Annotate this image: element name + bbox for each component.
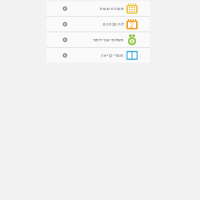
staticText: מערכת שעות <box>99 6 123 11</box>
staticText: $ <box>130 38 134 45</box>
staticText: חומרי קריאה <box>100 53 123 58</box>
button[interactable]: חומרי קריאה <box>46 48 150 63</box>
button[interactable]: לוח מבחנים <box>46 17 150 31</box>
button[interactable]: תשלומי שכר לימוד <box>46 32 150 47</box>
staticText: לוח מבחנים <box>102 22 123 27</box>
staticText: 2 <box>130 20 135 29</box>
staticText: תשלומי שכר לימוד <box>92 37 123 42</box>
button[interactable]: מערכת שעות <box>46 1 150 16</box>
